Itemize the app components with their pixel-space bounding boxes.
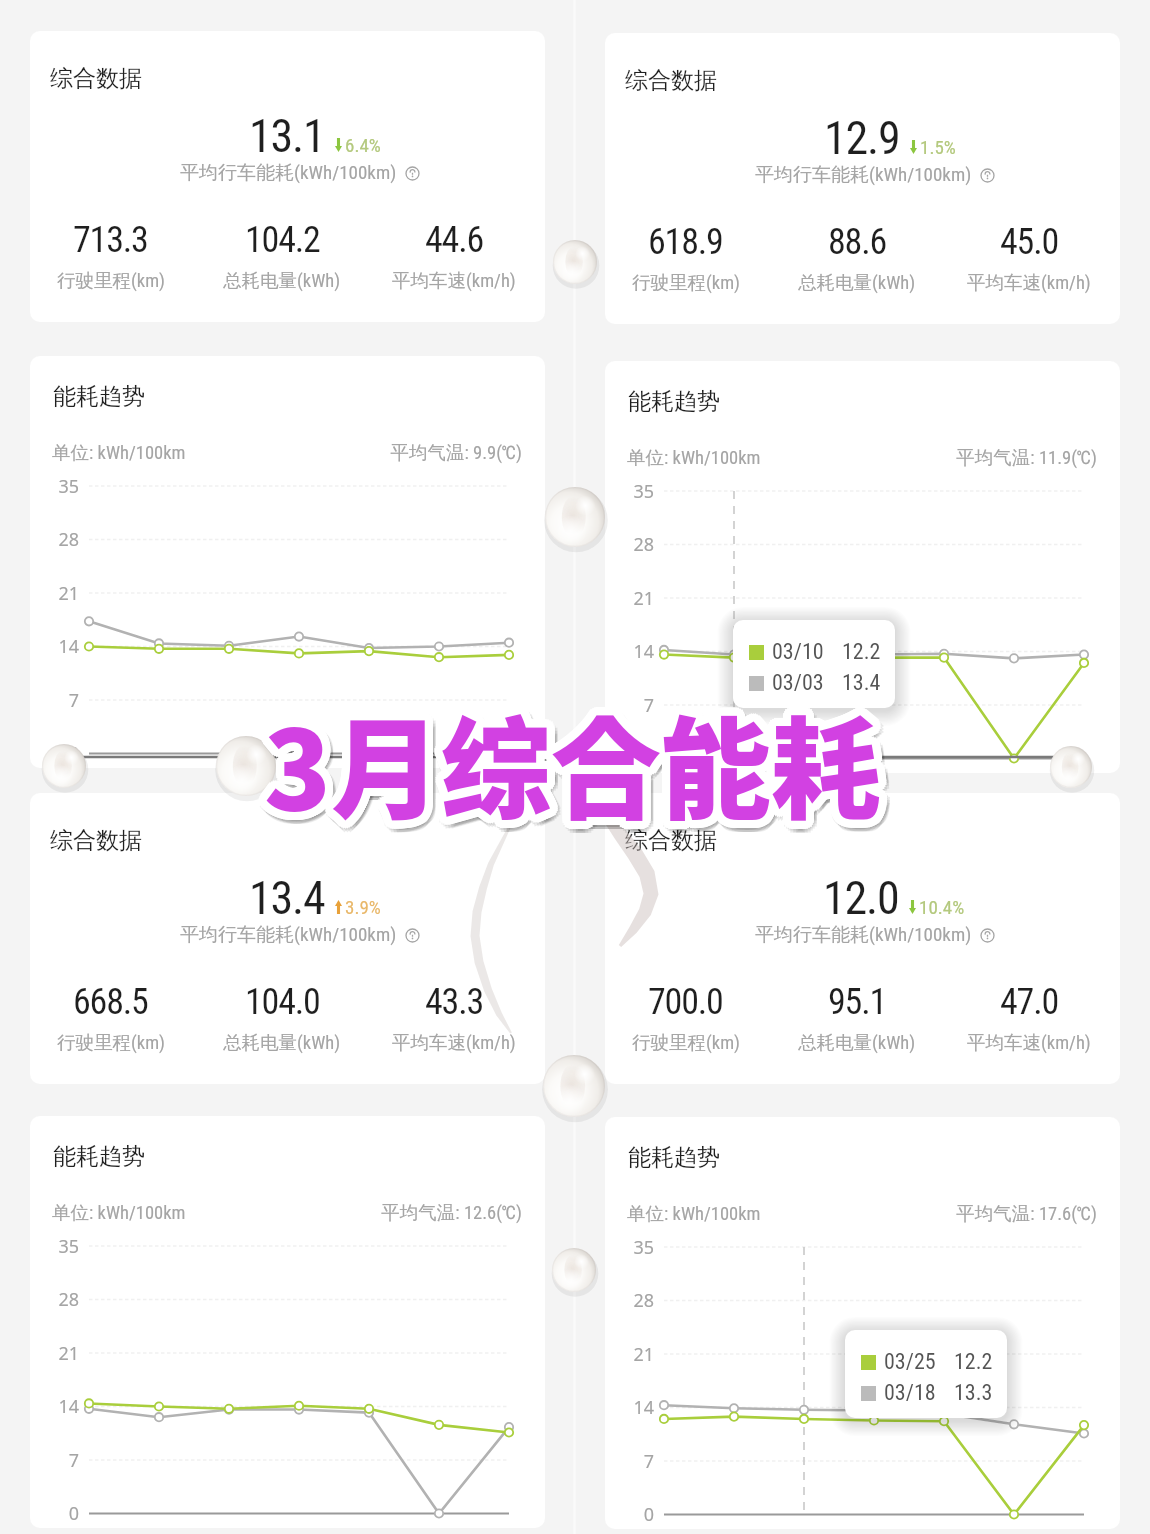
staticText: 3月综合能耗	[268, 675, 885, 834]
staticText: 3月综合能耗	[271, 686, 888, 845]
staticText: 21	[624, 1342, 654, 1367]
staticText: 平均车速(km/h)	[392, 1031, 516, 1054]
staticText: 平均车速(km/h)	[967, 1031, 1091, 1054]
staticText: 3月综合能耗	[266, 676, 883, 835]
staticText: 3月综合能耗	[257, 682, 874, 841]
staticText: 行驶里程(km)	[57, 269, 165, 292]
staticText: 3月综合能耗	[258, 688, 875, 847]
button[interactable]: 综合数据	[605, 33, 1120, 324]
button[interactable]: 能耗趋势	[30, 356, 545, 768]
staticText: 03/03	[772, 670, 824, 696]
staticText: 3月综合能耗	[264, 682, 881, 841]
button[interactable]: 能耗趋势	[30, 1116, 545, 1528]
staticText: 平均行车能耗(kWh/100km)	[180, 161, 397, 185]
staticText: 14	[49, 634, 79, 659]
staticText: 3月综合能耗	[275, 688, 892, 847]
staticText: 0	[624, 1502, 654, 1527]
staticText: 44.6	[425, 219, 484, 261]
staticText: 3月综合能耗	[256, 682, 873, 841]
staticText: 95.1	[828, 981, 887, 1023]
staticText: 104.2	[245, 219, 320, 261]
staticText: 3月综合能耗	[256, 680, 873, 839]
staticText: 3月综合能耗	[266, 674, 883, 833]
staticText: 0	[624, 746, 654, 771]
staticText: 12.9	[824, 111, 900, 165]
staticText: 综合数据	[625, 826, 717, 855]
staticText: 单位: kWh/100km	[627, 446, 761, 469]
staticText: 3月综合能耗	[271, 678, 888, 837]
staticText: 3月综合能耗	[273, 680, 890, 839]
staticText: 3月综合能耗	[266, 694, 883, 853]
staticText: 3月综合能耗	[259, 680, 876, 839]
staticText: 3.9%	[345, 896, 381, 918]
staticText: 668.5	[73, 981, 148, 1023]
staticText: 行驶里程(km)	[632, 1031, 740, 1054]
staticText: 14	[624, 639, 654, 664]
staticText: 3月综合能耗	[261, 678, 878, 837]
staticText: 21	[624, 586, 654, 611]
staticText: 14	[624, 1395, 654, 1420]
staticText: 平均气温: 11.9(℃)	[867, 446, 1097, 469]
staticText: 3月综合能耗	[261, 692, 878, 851]
staticText: 713.3	[73, 219, 148, 261]
staticText: 35	[624, 479, 654, 504]
staticText: 单位: kWh/100km	[52, 1201, 186, 1224]
staticText: 28	[624, 532, 654, 557]
staticText: 1.5%	[920, 136, 956, 158]
staticText: 43.3	[425, 981, 484, 1023]
staticText: 13.1	[249, 109, 325, 163]
staticText: 3月综合能耗	[268, 689, 885, 848]
staticText: 0	[49, 741, 79, 766]
staticText: 3月综合能耗	[272, 682, 889, 841]
button[interactable]: 综合数据	[605, 793, 1120, 1084]
staticText: 28	[49, 1287, 79, 1312]
staticText: 03/18	[884, 1380, 936, 1406]
staticText: 7	[49, 1448, 79, 1473]
staticText: 3月综合能耗	[262, 674, 879, 833]
staticText: 3月综合能耗	[271, 692, 888, 851]
staticText: 3月综合能耗	[257, 678, 874, 837]
staticText: 12.0	[823, 871, 899, 925]
staticText: 能耗趋势	[628, 387, 720, 416]
staticText: 3月综合能耗	[266, 690, 883, 849]
staticText: 行驶里程(km)	[632, 271, 740, 294]
staticText: 单位: kWh/100km	[52, 441, 186, 464]
button[interactable]: 能耗趋势	[605, 361, 1120, 773]
staticText: 3月综合能耗	[257, 686, 874, 845]
staticText: 3月综合能耗	[271, 678, 888, 837]
staticText: 104.0	[245, 981, 320, 1023]
staticText: 平均行车能耗(kWh/100km)	[180, 923, 397, 947]
staticText: 平均气温: 17.6(℃)	[867, 1202, 1097, 1225]
staticText: 能耗趋势	[53, 382, 145, 411]
staticText: 3月综合能耗	[263, 694, 880, 853]
staticText: 6.4%	[345, 134, 381, 156]
staticText: 3月综合能耗	[263, 676, 880, 835]
button[interactable]: 能耗趋势	[605, 1117, 1120, 1529]
staticText: 平均车速(km/h)	[392, 269, 516, 292]
staticText: 平均行车能耗(kWh/100km)	[755, 923, 972, 947]
staticText: 单位: kWh/100km	[627, 1202, 761, 1225]
staticText: 3月综合能耗	[262, 690, 879, 849]
staticText: 28	[624, 1288, 654, 1313]
staticText: 3月综合能耗	[257, 688, 874, 847]
staticText: 3月综合能耗	[273, 690, 890, 849]
staticText: 3月综合能耗	[256, 684, 873, 843]
staticText: 47.0	[1000, 981, 1059, 1023]
staticText: 总耗电量(kWh)	[223, 269, 341, 292]
staticText: 3月综合能耗	[270, 676, 887, 835]
staticText: 3月综合能耗	[259, 690, 876, 849]
staticText: 3月综合能耗	[272, 684, 889, 843]
staticText: 总耗电量(kWh)	[798, 271, 916, 294]
staticText: 3月综合能耗	[270, 688, 887, 847]
staticText: 13.4	[842, 670, 881, 696]
staticText: 总耗电量(kWh)	[798, 1031, 916, 1054]
staticText: 平均气温: 12.6(℃)	[292, 1201, 522, 1224]
staticText: 700.0	[648, 981, 723, 1023]
staticText: 3月综合能耗	[264, 690, 881, 849]
staticText: 能耗趋势	[628, 1143, 720, 1172]
staticText: 14	[49, 1394, 79, 1419]
staticText: 618.9	[648, 221, 723, 263]
button[interactable]: 综合数据	[30, 793, 545, 1084]
button[interactable]: 综合数据	[30, 31, 545, 322]
staticText: 3月综合能耗	[257, 685, 874, 844]
